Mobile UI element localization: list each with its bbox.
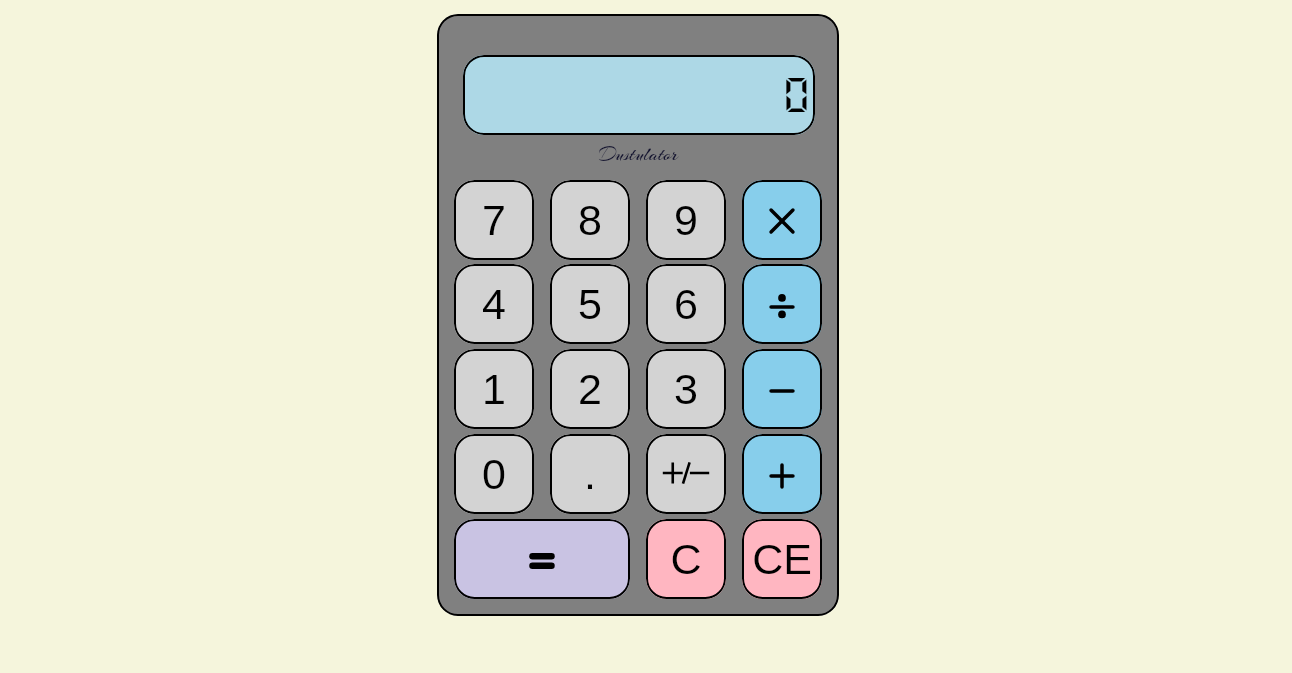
button[interactable]: 8	[550, 180, 630, 260]
button[interactable]: Equals	[454, 519, 630, 599]
staticText: C	[670, 535, 702, 583]
staticText: 0	[482, 450, 506, 498]
button[interactable]: Multiply	[742, 180, 822, 260]
button[interactable]: 9	[646, 180, 726, 260]
staticText: .	[584, 450, 596, 498]
staticText: 1	[482, 365, 506, 413]
staticText: Dustulator	[599, 143, 678, 167]
staticText: 9	[674, 196, 698, 244]
staticText: 3	[674, 365, 698, 413]
button[interactable]: 6	[646, 264, 726, 344]
button[interactable]: Calculator display, 0	[463, 55, 815, 135]
button[interactable]: 7	[454, 180, 534, 260]
staticText: 7	[482, 196, 506, 244]
button[interactable]: Subtract	[742, 349, 822, 429]
button[interactable]: 3	[646, 349, 726, 429]
staticText: 2	[578, 365, 602, 413]
button[interactable]: C	[646, 519, 726, 599]
button[interactable]: 5	[550, 264, 630, 344]
staticText: 8	[578, 196, 602, 244]
button[interactable]: Add	[742, 434, 822, 514]
button[interactable]: .	[550, 434, 630, 514]
staticText: CE	[752, 535, 812, 583]
button[interactable]: 4	[454, 264, 534, 344]
button[interactable]: 0	[454, 434, 534, 514]
staticText: 5	[578, 280, 602, 328]
staticText: 4	[482, 280, 506, 328]
button[interactable]: 1	[454, 349, 534, 429]
button[interactable]: CE	[742, 519, 822, 599]
button[interactable]: 2	[550, 349, 630, 429]
button[interactable]: Toggle sign	[646, 434, 726, 514]
button[interactable]: Divide	[742, 264, 822, 344]
staticText: 6	[674, 280, 698, 328]
staticText: 0	[781, 72, 813, 116]
